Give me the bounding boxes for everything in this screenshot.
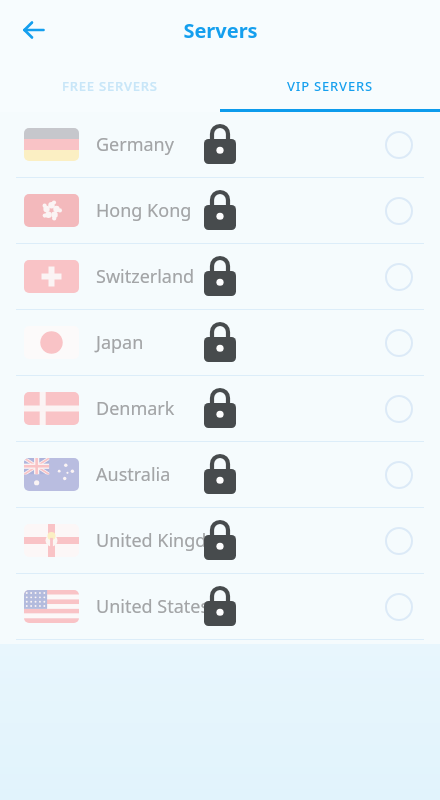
button[interactable]: Denmark <box>0 376 440 441</box>
button[interactable]: Select Japan <box>382 326 416 360</box>
button[interactable]: Hong Kong <box>0 178 440 243</box>
button[interactable]: Select Australia <box>382 458 416 492</box>
staticText: United Kingdom <box>96 528 235 553</box>
button[interactable]: Germany <box>0 112 440 177</box>
button[interactable]: United Kingdom <box>0 508 440 573</box>
button[interactable]: Select Switzerland <box>382 260 416 294</box>
staticText: United States <box>96 594 210 619</box>
button[interactable]: VIP SERVERS <box>220 60 440 112</box>
button[interactable]: United States <box>0 574 440 639</box>
button[interactable]: Select United Kingdom <box>382 524 416 558</box>
staticText: Denmark <box>96 396 175 421</box>
button[interactable]: Select Denmark <box>382 392 416 426</box>
staticText: Hong Kong <box>96 198 192 223</box>
button[interactable]: Switzerland <box>0 244 440 309</box>
staticText: Japan <box>96 330 144 355</box>
button[interactable]: Select United States <box>382 590 416 624</box>
button[interactable]: FREE SERVERS <box>0 60 220 112</box>
button[interactable]: Australia <box>0 442 440 507</box>
button[interactable]: Select Germany <box>382 128 416 162</box>
button[interactable]: Back <box>12 8 56 52</box>
staticText: Servers <box>183 17 258 44</box>
staticText: Switzerland <box>96 264 195 289</box>
staticText: Germany <box>96 132 174 157</box>
staticText: FREE SERVERS <box>62 77 158 95</box>
button[interactable]: Japan <box>0 310 440 375</box>
staticText: VIP SERVERS <box>287 77 373 95</box>
button[interactable]: Select Hong Kong <box>382 194 416 228</box>
staticText: Australia <box>96 462 171 487</box>
